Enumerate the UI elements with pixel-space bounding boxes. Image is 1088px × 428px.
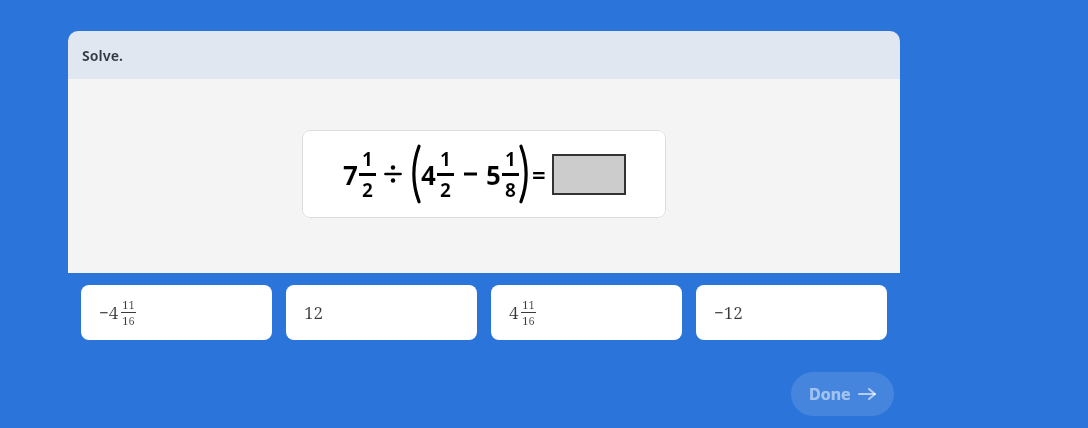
button[interactable]: 4 [491, 285, 682, 340]
staticText: 4 [421, 157, 436, 192]
staticText: −12 [714, 301, 743, 324]
staticText: 11 [522, 297, 535, 312]
staticText: 1 [362, 146, 373, 172]
button[interactable]: −12 [696, 285, 887, 340]
staticText: 7 [343, 157, 358, 192]
staticText: Solve. [82, 46, 123, 65]
staticText: 2 [362, 177, 373, 203]
staticText: 8 [505, 177, 516, 203]
staticText: 1 [505, 146, 516, 172]
staticText: 11 [122, 297, 135, 312]
button[interactable]: Answer input [552, 154, 626, 195]
staticText: −4 [99, 301, 119, 324]
button[interactable]: −4 [81, 285, 272, 340]
button[interactable]: Done [791, 372, 894, 416]
button[interactable]: 12 [286, 285, 477, 340]
staticText: 5 [486, 157, 501, 192]
staticText: 2 [440, 177, 451, 203]
staticText: 12 [304, 301, 324, 324]
staticText: 16 [122, 313, 135, 328]
staticText: 1 [440, 146, 451, 172]
staticText: Done [809, 383, 851, 405]
staticText: = [532, 158, 546, 191]
staticText: 16 [522, 313, 535, 328]
staticText: 4 [509, 301, 519, 324]
